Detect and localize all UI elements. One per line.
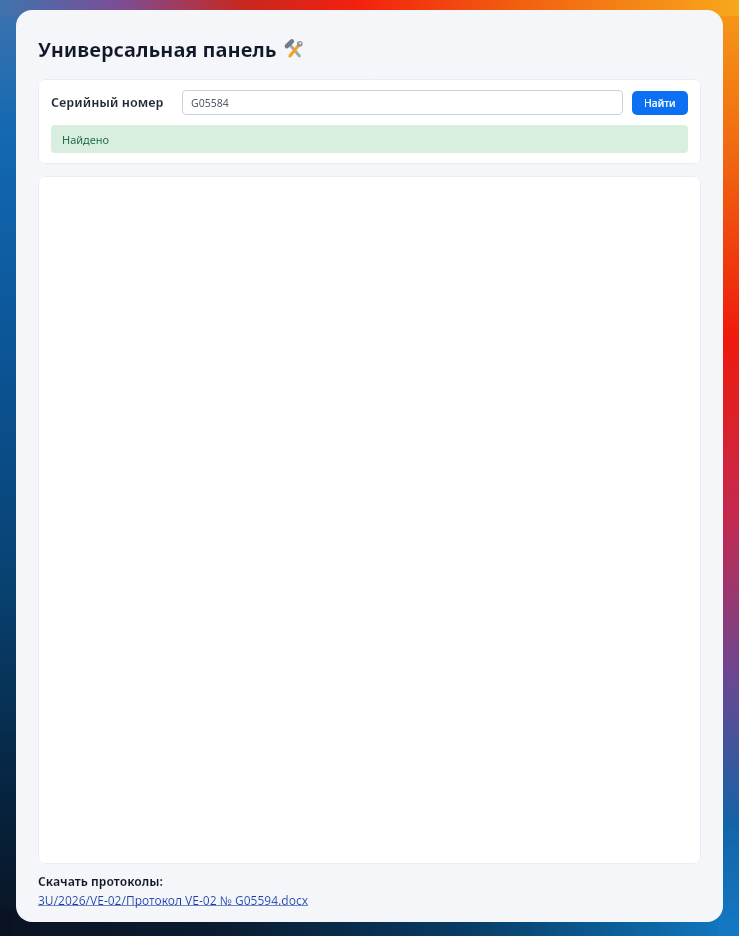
button[interactable]: 3U/2026/VE-02/Протокол VE-02 № G05594.do… xyxy=(38,892,309,908)
button[interactable]: Найти xyxy=(632,91,688,115)
button[interactable]: G05584 xyxy=(182,90,623,115)
staticText: Универсальная панель xyxy=(38,36,277,63)
staticText: Найти xyxy=(644,96,676,110)
staticText: Серийный номер xyxy=(51,94,164,111)
other: Tools xyxy=(285,40,304,59)
staticText: Найдено xyxy=(62,132,110,147)
staticText: Скачать протоколы: xyxy=(38,873,163,889)
staticText: G05584 xyxy=(191,96,229,110)
staticText: 3U/2026/VE-02/Протокол VE-02 № G05594.do… xyxy=(38,892,309,908)
